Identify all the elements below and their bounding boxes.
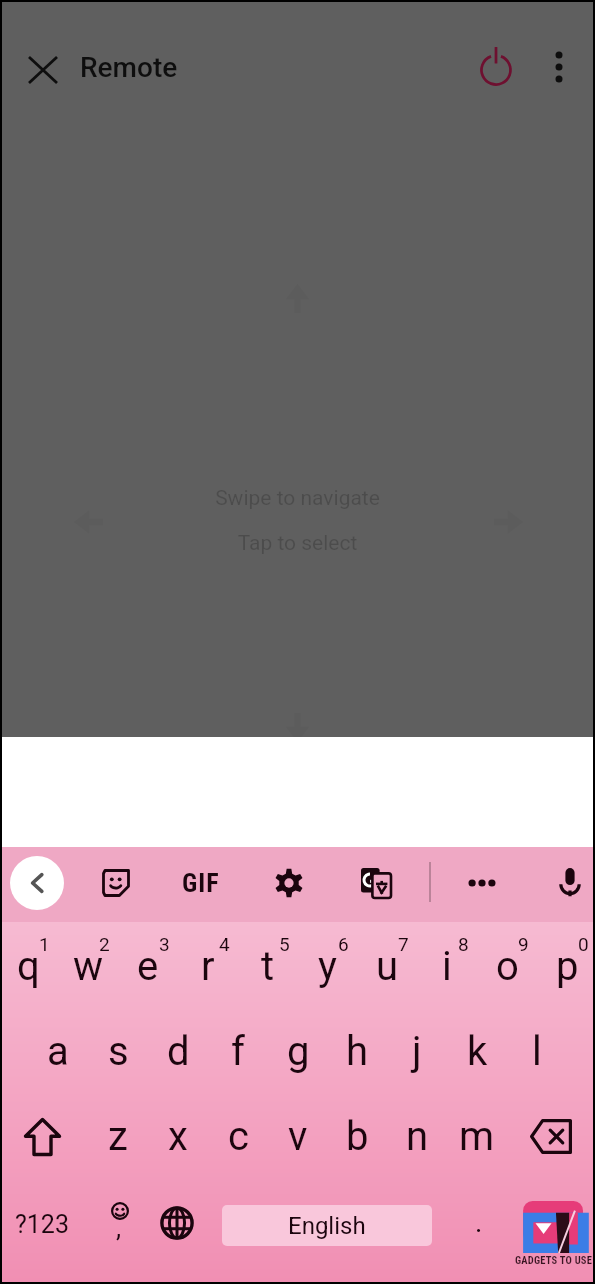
button[interactable]: t [238, 924, 298, 1009]
staticText: c [228, 1113, 249, 1160]
button[interactable]: ?123 [2, 1179, 82, 1267]
staticText: r [201, 943, 215, 990]
button[interactable]: i [417, 924, 477, 1009]
staticText: p [556, 943, 579, 990]
staticText: 3 [159, 933, 170, 955]
staticText: 2 [99, 933, 110, 955]
staticText: e [137, 943, 159, 990]
staticText: 6 [338, 933, 349, 955]
staticText: n [406, 1113, 429, 1160]
staticText: Remote [80, 51, 178, 84]
button[interactable]: f [208, 1009, 268, 1094]
button[interactable]: More options [533, 41, 585, 93]
button[interactable]: More keyboard options [456, 857, 508, 909]
button[interactable]: . [450, 1179, 509, 1267]
staticText: Swipe to navigate [2, 486, 593, 511]
button[interactable]: j [387, 1009, 447, 1094]
button[interactable]: Stickers [90, 857, 142, 909]
staticText: f [231, 1028, 245, 1075]
button[interactable]: m [447, 1094, 507, 1179]
staticText: x [168, 1113, 188, 1160]
button[interactable]: d [148, 1009, 208, 1094]
staticText: 9 [518, 933, 529, 955]
button[interactable]: l [507, 1009, 567, 1094]
button[interactable]: p [537, 924, 595, 1009]
staticText: k [467, 1028, 488, 1075]
staticText: 4 [219, 933, 230, 955]
staticText: q [17, 943, 40, 990]
staticText: m [459, 1113, 495, 1160]
button[interactable]: Power [470, 40, 522, 92]
button[interactable]: English [222, 1205, 432, 1246]
staticText: 7 [398, 933, 409, 955]
button[interactable]: e [118, 924, 178, 1009]
staticText: GADGETS TO USE [515, 1254, 593, 1266]
button[interactable]: Touchpad: swipe to navigate, tap to sele… [2, 2, 593, 737]
button[interactable]: y [297, 924, 357, 1009]
staticText: v [288, 1113, 308, 1160]
button[interactable]: Backspace [510, 1094, 592, 1179]
button[interactable]: Voice input [544, 857, 595, 909]
staticText: d [167, 1028, 190, 1075]
button[interactable]: u [357, 924, 417, 1009]
staticText: English [288, 1212, 366, 1240]
button[interactable]: c [208, 1094, 268, 1179]
staticText: GIF [182, 868, 220, 898]
staticText: . [475, 1206, 483, 1239]
staticText: 1 [39, 933, 50, 955]
staticText: y [318, 943, 337, 990]
button[interactable]: o [477, 924, 537, 1009]
staticText: b [346, 1113, 369, 1160]
button[interactable]: x [148, 1094, 208, 1179]
staticText: 8 [458, 933, 469, 955]
button[interactable]: q [0, 924, 58, 1009]
staticText: , [116, 1213, 122, 1243]
staticText: a [47, 1028, 69, 1075]
button[interactable]: k [447, 1009, 507, 1094]
staticText: u [376, 943, 399, 990]
button[interactable]: z [88, 1094, 148, 1179]
staticText: s [108, 1028, 129, 1075]
staticText: h [346, 1028, 369, 1075]
staticText: t [261, 943, 275, 990]
button[interactable]: n [387, 1094, 447, 1179]
staticText: ?123 [15, 1210, 69, 1239]
staticText: 0 [578, 933, 589, 955]
button[interactable]: g [268, 1009, 328, 1094]
staticText: 5 [279, 933, 290, 955]
button[interactable]: Translate [350, 857, 402, 909]
staticText: j [412, 1028, 422, 1075]
button[interactable]: r [178, 924, 238, 1009]
button[interactable]: Close [17, 44, 69, 96]
staticText: i [442, 943, 452, 990]
staticText: z [108, 1113, 128, 1160]
button[interactable]: v [268, 1094, 328, 1179]
button[interactable]: Change keyboard language [150, 1179, 209, 1267]
staticText: w [73, 943, 104, 990]
button[interactable]: Shift [2, 1094, 83, 1179]
button[interactable]: Back [10, 856, 64, 910]
button[interactable]: Emoji [91, 1179, 150, 1267]
button[interactable]: GIF [171, 857, 231, 909]
button[interactable]: Keyboard settings [263, 857, 315, 909]
staticText: l [532, 1028, 542, 1075]
button[interactable]: b [327, 1094, 387, 1179]
staticText: g [287, 1028, 310, 1075]
button[interactable]: a [28, 1009, 88, 1094]
staticText: o [496, 943, 519, 990]
button[interactable]: h [327, 1009, 387, 1094]
button[interactable]: w [58, 924, 118, 1009]
button[interactable]: s [88, 1009, 148, 1094]
